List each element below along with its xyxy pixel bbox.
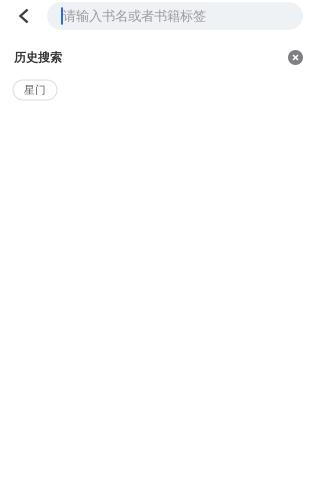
button[interactable]: Search [47,2,303,30]
button[interactable]: 星门 [13,80,57,100]
staticText: 历史搜索 [14,50,62,65]
staticText: 星门 [24,83,46,96]
button[interactable]: Back [10,1,38,31]
staticText: 请输入书名或者书籍标签 [63,8,206,24]
button[interactable]: Clear search history [288,50,303,65]
